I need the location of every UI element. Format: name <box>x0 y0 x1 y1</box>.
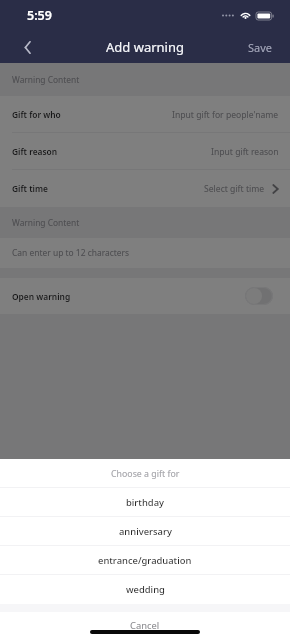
button[interactable]: Back <box>0 31 54 63</box>
staticText: Save <box>248 40 273 55</box>
button[interactable]: Gift time <box>0 170 290 207</box>
staticText: 5:59 <box>27 7 52 24</box>
button[interactable]: birthday <box>0 488 290 517</box>
staticText: Add warning <box>106 38 184 56</box>
button[interactable]: Save <box>231 32 290 63</box>
staticText: Input gift for people'name <box>172 109 279 121</box>
button[interactable]: Gift reason <box>0 133 290 170</box>
button[interactable]: anniversary <box>0 517 290 546</box>
staticText: Can enter up to 12 characters <box>12 247 130 259</box>
staticText: entrance/graduation <box>98 554 192 567</box>
button[interactable]: wedding <box>0 575 290 604</box>
button[interactable]: Open warning <box>245 287 273 305</box>
staticText: Warning Content <box>12 217 80 228</box>
staticText: Open warning <box>12 291 71 302</box>
staticText: Select gift time <box>204 183 265 195</box>
staticText: Gift reason <box>12 146 58 157</box>
staticText: Warning Content <box>12 74 80 85</box>
staticText: Input gift reason <box>211 146 279 158</box>
staticText: Cancel <box>130 619 160 632</box>
staticText: birthday <box>126 496 164 509</box>
button[interactable]: Can enter up to 12 characters <box>0 238 290 268</box>
staticText: wedding <box>126 583 165 596</box>
staticText: Gift time <box>12 183 48 194</box>
button[interactable]: Gift for who <box>0 96 290 133</box>
staticText: anniversary <box>119 525 172 538</box>
button[interactable]: Cancel <box>0 612 290 639</box>
button[interactable]: entrance/graduation <box>0 546 290 575</box>
staticText: Gift for who <box>12 109 61 120</box>
staticText: Choose a gift for <box>111 468 180 480</box>
